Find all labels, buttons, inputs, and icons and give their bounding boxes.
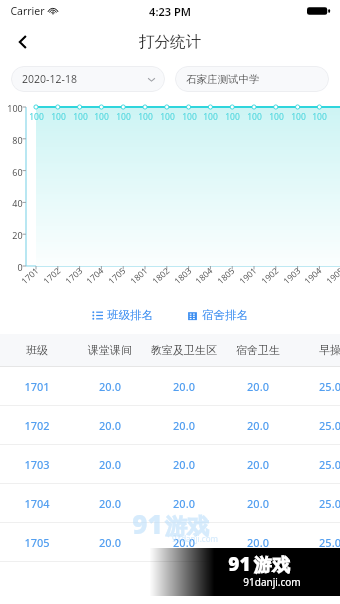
staticText: 1801 <box>128 265 150 287</box>
staticText: 91 <box>132 506 163 541</box>
staticText: 91 <box>228 551 251 577</box>
staticText: 课堂课间 <box>88 343 132 357</box>
staticText: 1902 <box>259 265 281 287</box>
staticText: 91danji.com <box>172 533 218 544</box>
staticText: 20.0 <box>247 496 269 511</box>
staticText: 1904 <box>302 265 324 287</box>
staticText: 1701 <box>19 265 41 287</box>
staticText: 100 <box>138 111 153 123</box>
button[interactable]: 宿舍排名 <box>181 305 254 325</box>
staticText: 40 <box>12 197 23 209</box>
staticText: 80 <box>12 134 23 146</box>
staticText: 1703 <box>63 265 85 287</box>
staticText: 20.0 <box>247 457 269 472</box>
staticText: 91danji.com <box>243 575 301 589</box>
staticText: 20.0 <box>173 535 195 550</box>
button[interactable]: 1704 <box>0 484 340 523</box>
staticText: 1703 <box>24 457 50 472</box>
staticText: 早操 <box>319 343 340 357</box>
staticText: 宿舍卫生 <box>236 343 280 357</box>
staticText: 4:23 PM <box>149 4 191 19</box>
button[interactable]: 石家庄测试中学 <box>175 66 329 92</box>
staticText: 教室及卫生区 <box>151 343 217 357</box>
staticText: 游戏 <box>254 554 290 577</box>
staticText: 100 <box>182 111 197 123</box>
staticText: 25.0 <box>319 379 340 394</box>
staticText: 100 <box>7 102 23 114</box>
staticText: 60 <box>12 166 23 178</box>
staticText: 1802 <box>150 265 172 287</box>
staticText: 1702 <box>41 265 63 287</box>
staticText: 1704 <box>84 265 106 287</box>
staticText: 打分统计 <box>139 32 201 52</box>
staticText: 1701 <box>24 379 50 394</box>
button[interactable]: Back <box>6 25 40 59</box>
staticText: 20 <box>12 229 23 241</box>
staticText: 20.0 <box>173 496 195 511</box>
staticText: 100 <box>225 111 240 123</box>
staticText: 1704 <box>24 496 50 511</box>
staticText: 20.0 <box>247 535 269 550</box>
staticText: 100 <box>73 111 88 123</box>
staticText: 宿舍排名 <box>202 308 248 322</box>
staticText: 100 <box>291 111 306 123</box>
staticText: 1805 <box>215 265 237 287</box>
staticText: 1804 <box>193 265 215 287</box>
staticText: 班级 <box>26 343 48 357</box>
staticText: 1905 <box>324 265 340 287</box>
staticText: 1705 <box>106 265 128 287</box>
staticText: 25.0 <box>319 535 340 550</box>
staticText: 2020-12-18 <box>22 72 77 86</box>
staticText: 1903 <box>281 265 303 287</box>
staticText: 0 <box>17 261 23 273</box>
button[interactable]: 1705 <box>0 523 340 562</box>
staticText: 100 <box>203 111 218 123</box>
staticText: 石家庄测试中学 <box>186 73 260 86</box>
button[interactable]: 1703 <box>0 445 340 484</box>
button[interactable]: 1702 <box>0 406 340 445</box>
staticText: 班级排名 <box>107 308 153 322</box>
staticText: 100 <box>247 111 262 123</box>
staticText: 100 <box>269 111 284 123</box>
button[interactable]: 1701 <box>0 367 340 406</box>
staticText: 20.0 <box>99 457 121 472</box>
staticText: 1705 <box>24 535 50 550</box>
staticText: 100 <box>94 111 109 123</box>
staticText: 20.0 <box>173 379 195 394</box>
staticText: 100 <box>312 111 327 123</box>
staticText: 20.0 <box>99 418 121 433</box>
staticText: 25.0 <box>319 418 340 433</box>
staticText: 1803 <box>172 265 194 287</box>
staticText: 100 <box>51 111 66 123</box>
staticText: 20.0 <box>247 418 269 433</box>
staticText: 20.0 <box>173 457 195 472</box>
staticText: 20.0 <box>247 379 269 394</box>
staticText: 25.0 <box>319 457 340 472</box>
staticText: Carrier <box>10 4 45 18</box>
staticText: 20.0 <box>173 418 195 433</box>
staticText: 20.0 <box>99 496 121 511</box>
staticText: 游戏 <box>165 513 209 541</box>
staticText: 100 <box>116 111 131 123</box>
staticText: 1702 <box>24 418 50 433</box>
button[interactable]: 2020-12-18 <box>11 66 165 92</box>
staticText: 20.0 <box>99 535 121 550</box>
staticText: 1901 <box>237 265 259 287</box>
staticText: 20.0 <box>99 379 121 394</box>
staticText: 25.0 <box>319 496 340 511</box>
button[interactable]: 班级排名 <box>86 305 159 325</box>
staticText: 100 <box>29 111 44 123</box>
staticText: 100 <box>160 111 175 123</box>
